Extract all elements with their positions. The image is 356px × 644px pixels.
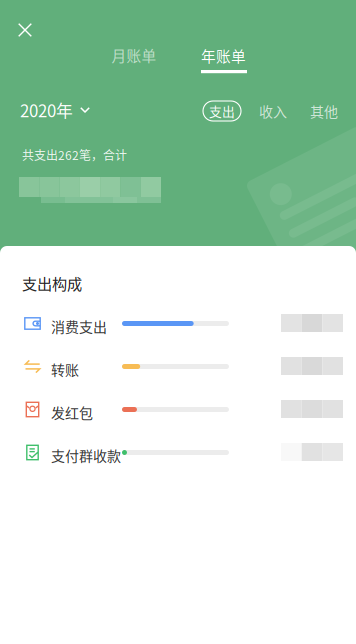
staticText: 2020年 (20, 98, 73, 122)
staticText: 月账单 (111, 44, 156, 66)
button[interactable]: 年账单 (190, 40, 258, 80)
staticText: 共支出262笔，合计 (22, 146, 127, 163)
button[interactable]: Close (8, 13, 42, 47)
staticText: 年账单 (201, 45, 246, 66)
staticText: 发红包 (51, 402, 93, 422)
staticText: 支出 (209, 102, 235, 120)
staticText: 支付群收款 (51, 445, 121, 465)
button[interactable]: 月账单 (100, 38, 168, 72)
button[interactable]: 发红包 (0, 388, 356, 431)
button[interactable]: 其他 (307, 101, 341, 121)
button[interactable]: 2020年 (12, 96, 98, 124)
button[interactable]: 消费支出 (0, 302, 356, 345)
staticText: 支出构成 (22, 272, 82, 294)
staticText: 其他 (310, 101, 338, 121)
button[interactable]: 支付群收款 (0, 431, 356, 474)
staticText: 转账 (51, 359, 79, 379)
button[interactable]: 转账 (0, 345, 356, 388)
button[interactable]: 收入 (256, 101, 290, 121)
staticText: 消费支出 (51, 316, 107, 336)
staticText: 收入 (259, 101, 287, 121)
button[interactable]: 支出 (203, 101, 241, 121)
